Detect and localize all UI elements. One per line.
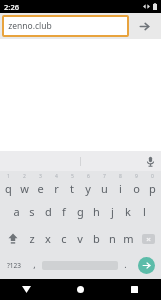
button[interactable]: Voice input: [139, 151, 161, 171]
staticText: 8: [119, 173, 122, 180]
staticText: l: [143, 204, 146, 219]
button[interactable]: 3: [32, 171, 48, 198]
button[interactable]: .: [118, 253, 133, 278]
staticText: .: [124, 258, 127, 270]
button[interactable]: Shift: [1, 225, 24, 252]
button[interactable]: 2: [16, 171, 32, 198]
button[interactable]: 1: [1, 171, 16, 198]
staticText: g: [77, 204, 84, 219]
staticText: 4: [55, 173, 58, 180]
button[interactable]: 0: [144, 171, 160, 198]
staticText: o: [133, 181, 140, 196]
button[interactable]: k: [120, 198, 136, 225]
staticText: t: [70, 181, 74, 196]
button[interactable]: l: [136, 198, 152, 225]
button[interactable]: ,: [27, 253, 42, 278]
staticText: zenno.club: [8, 20, 52, 32]
button[interactable]: Back: [0, 279, 53, 300]
button[interactable]: zenno.club: [4, 17, 127, 35]
button[interactable]: m: [120, 225, 136, 252]
button[interactable]: d: [40, 198, 56, 225]
button[interactable]: f: [56, 198, 72, 225]
staticText: f: [62, 204, 66, 219]
staticText: 7: [103, 173, 106, 180]
button[interactable]: a: [8, 198, 24, 225]
staticText: ?123: [7, 261, 21, 270]
staticText: b: [93, 231, 100, 246]
button[interactable]: z: [24, 225, 40, 252]
staticText: y: [85, 181, 91, 196]
staticText: k: [125, 204, 131, 219]
staticText: d: [45, 204, 52, 219]
staticText: ,: [33, 258, 36, 270]
button[interactable]: 7: [96, 171, 112, 198]
button[interactable]: b: [88, 225, 104, 252]
staticText: 2:26: [4, 2, 19, 12]
staticText: 1: [7, 173, 10, 180]
staticText: z: [29, 231, 35, 246]
staticText: v: [77, 231, 83, 246]
button[interactable]: Go: [129, 15, 159, 37]
staticText: 2: [23, 173, 26, 180]
button[interactable]: 9: [128, 171, 144, 198]
button[interactable]: ?123: [1, 253, 27, 278]
staticText: u: [101, 181, 108, 196]
button[interactable]: n: [104, 225, 120, 252]
button[interactable]: Recents: [107, 279, 161, 300]
staticText: c: [61, 231, 67, 246]
button[interactable]: s: [24, 198, 40, 225]
button[interactable]: 8: [112, 171, 128, 198]
staticText: p: [149, 181, 156, 196]
staticText: w: [20, 181, 29, 196]
staticText: s: [29, 204, 35, 219]
button[interactable]: v: [72, 225, 88, 252]
staticText: x: [45, 231, 51, 246]
staticText: 9: [135, 173, 138, 180]
staticText: h: [93, 204, 100, 219]
staticText: 3: [39, 173, 42, 180]
button[interactable]: 4: [48, 171, 64, 198]
staticText: 0: [151, 173, 154, 180]
button[interactable]: Enter: [133, 253, 160, 278]
staticText: a: [13, 204, 20, 219]
button[interactable]: j: [104, 198, 120, 225]
button[interactable]: 6: [80, 171, 96, 198]
button[interactable]: x: [40, 225, 56, 252]
staticText: n: [109, 231, 116, 246]
button[interactable]: g: [72, 198, 88, 225]
staticText: 5: [71, 173, 74, 180]
staticText: r: [54, 181, 59, 196]
staticText: 6: [87, 173, 90, 180]
staticText: i: [119, 181, 122, 196]
button[interactable]: Home: [53, 279, 107, 300]
staticText: j: [111, 204, 114, 219]
staticText: e: [37, 181, 44, 196]
staticText: m: [123, 231, 134, 246]
staticText: q: [5, 181, 12, 196]
button[interactable]: Backspace: [136, 225, 160, 252]
button[interactable]: c: [56, 225, 72, 252]
button[interactable]: h: [88, 198, 104, 225]
button[interactable]: 5: [64, 171, 80, 198]
